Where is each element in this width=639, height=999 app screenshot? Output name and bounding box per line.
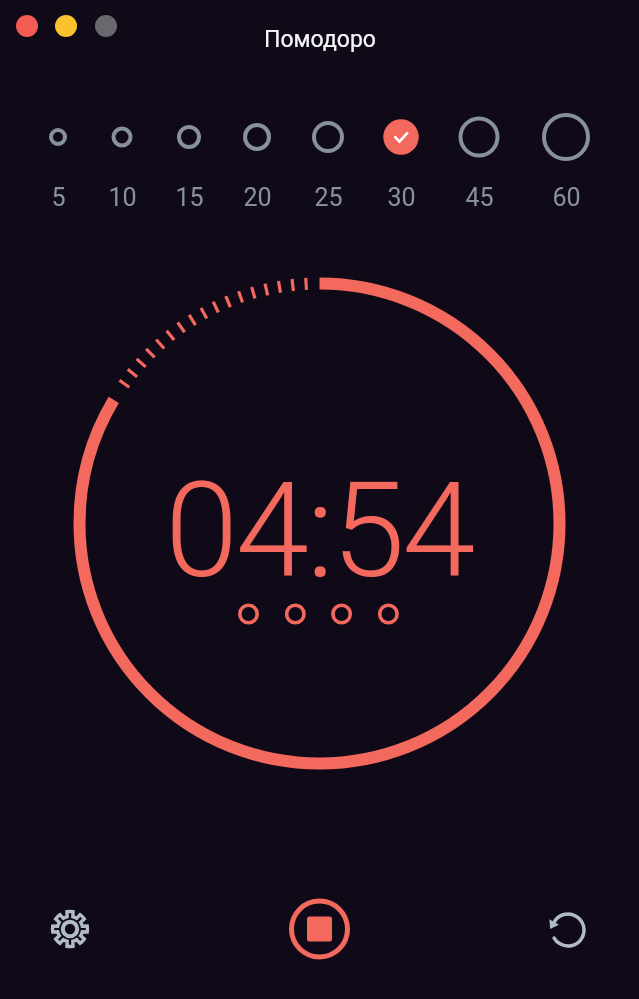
staticText: 25 <box>314 183 343 211</box>
button[interactable] <box>289 898 351 960</box>
staticText: 04:54 <box>165 454 474 609</box>
button[interactable] <box>225 107 289 211</box>
button[interactable] <box>296 107 360 211</box>
button[interactable] <box>534 107 598 211</box>
button[interactable] <box>542 904 594 956</box>
staticText: 10 <box>108 183 137 211</box>
staticText: 60 <box>552 183 581 211</box>
button[interactable] <box>44 903 96 955</box>
staticText: 5 <box>51 183 66 211</box>
button[interactable] <box>26 107 90 211</box>
button[interactable] <box>447 107 511 211</box>
button[interactable] <box>90 107 154 211</box>
staticText: 15 <box>175 183 204 211</box>
staticText: 45 <box>465 183 494 211</box>
button[interactable] <box>369 107 433 211</box>
staticText: 30 <box>387 183 416 211</box>
button[interactable] <box>157 107 221 211</box>
staticText: 20 <box>243 183 272 211</box>
staticText: Помодоро <box>264 26 376 53</box>
